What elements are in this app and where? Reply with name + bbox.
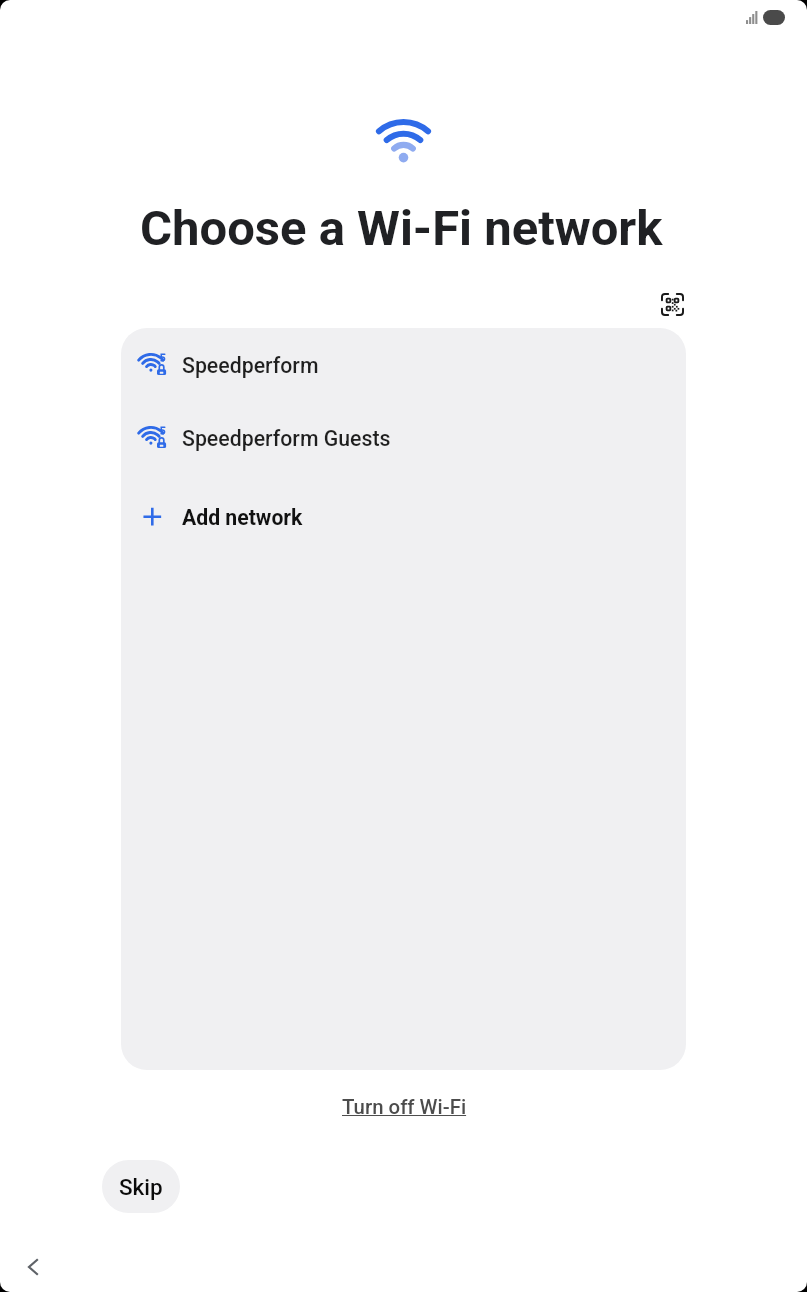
staticText: Turn off Wi-Fi: [342, 1095, 467, 1119]
button[interactable]: Add network: [121, 478, 686, 556]
button[interactable]: Back: [11, 1245, 55, 1289]
button[interactable]: Speedperform: [121, 328, 686, 402]
button[interactable]: Speedperform Guests: [121, 402, 686, 474]
staticText: Speedperform Guests: [182, 426, 391, 451]
staticText: Skip: [119, 1174, 163, 1200]
button[interactable]: Skip: [102, 1160, 180, 1213]
button[interactable]: Turn off Wi-Fi: [330, 1090, 479, 1124]
button[interactable]: Scan QR code: [648, 280, 696, 328]
staticText: Choose a Wi-Fi network: [140, 200, 663, 257]
staticText: Add network: [182, 505, 303, 530]
staticText: Speedperform: [182, 353, 319, 378]
